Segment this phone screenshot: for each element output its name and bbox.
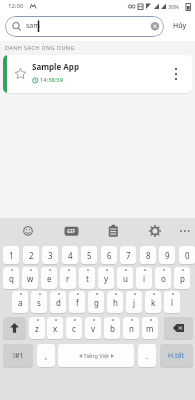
button[interactable]: v (85, 317, 101, 339)
staticText: v (91, 323, 96, 334)
button[interactable]: u (117, 267, 133, 289)
staticText: t (86, 273, 89, 284)
button[interactable]: j (126, 291, 142, 313)
staticText: a (18, 297, 23, 308)
button[interactable]: 8 (140, 246, 156, 264)
button[interactable]: q (3, 267, 19, 289)
button[interactable]: t (79, 267, 95, 289)
staticText: H.tất (168, 351, 185, 361)
staticText: 30% (168, 3, 179, 10)
staticText: 12:00 (8, 2, 24, 10)
staticText: c (72, 323, 76, 334)
staticText: Hủy (173, 21, 187, 31)
staticText: 14:38:59 (40, 76, 64, 84)
button[interactable]: k (145, 291, 161, 313)
button[interactable]: Hủy (168, 18, 192, 34)
button[interactable]: b (104, 317, 120, 339)
button[interactable]: Tiếng Việt (58, 344, 134, 367)
staticText: f (76, 297, 79, 308)
staticText: 3 (48, 250, 53, 261)
staticText: y (104, 273, 109, 284)
staticText: j (133, 297, 136, 308)
staticText: m (146, 323, 154, 334)
button[interactable]: , (37, 344, 55, 367)
staticText: u (123, 273, 128, 284)
staticText: 0 (185, 250, 190, 261)
button[interactable]: 4 (62, 246, 78, 264)
button[interactable]: 6 (101, 246, 117, 264)
staticText: 7 (126, 250, 131, 261)
staticText: 6 (107, 250, 112, 261)
staticText: DANH SÁCH ỨNG DỤNG (5, 44, 75, 51)
button[interactable]: f (69, 291, 85, 313)
staticText: b (110, 323, 115, 334)
button[interactable]: l (164, 291, 180, 313)
button[interactable]: g (88, 291, 104, 313)
button[interactable]: x (47, 317, 63, 339)
staticText: i (143, 273, 146, 284)
staticText: 5 (87, 250, 92, 261)
staticText: 9 (165, 250, 170, 261)
staticText: , (45, 350, 48, 361)
staticText: s (37, 297, 41, 308)
staticText: Sample App (32, 61, 79, 72)
button[interactable]: y (98, 267, 114, 289)
button[interactable]: z (29, 317, 45, 339)
button[interactable]: w (22, 267, 38, 289)
button[interactable]: 2 (23, 246, 39, 264)
button[interactable]: 3 (42, 246, 58, 264)
staticText: 8 (146, 250, 151, 261)
button[interactable]: a (12, 291, 28, 313)
staticText: q (9, 273, 14, 284)
staticText: l (171, 297, 174, 308)
staticText: r (66, 273, 70, 284)
button[interactable]: !#1 (3, 344, 33, 367)
button[interactable]: 7 (120, 246, 136, 264)
staticText: h (113, 297, 118, 308)
staticText: 1 (9, 250, 14, 261)
button[interactable]: o (155, 267, 171, 289)
staticText: !#1 (13, 351, 24, 361)
button[interactable]: Sample App (3, 55, 192, 93)
staticText: . (146, 350, 149, 361)
button[interactable]: 0 (179, 246, 195, 264)
button[interactable]: . (138, 344, 156, 367)
button[interactable]: s (31, 291, 47, 313)
button[interactable]: n (123, 317, 139, 339)
button[interactable] (164, 317, 193, 339)
button[interactable]: e (41, 267, 57, 289)
staticText: w (27, 273, 34, 284)
button[interactable]: c (66, 317, 82, 339)
button[interactable] (174, 66, 178, 82)
staticText: 4 (68, 250, 73, 261)
button[interactable]: i (136, 267, 152, 289)
button[interactable] (3, 317, 26, 339)
staticText: d (56, 297, 61, 308)
staticText: x (53, 323, 58, 334)
button[interactable]: h (107, 291, 123, 313)
button[interactable]: r (60, 267, 76, 289)
staticText: z (35, 323, 39, 334)
button[interactable]: 1 (3, 246, 19, 264)
button[interactable]: H.tất (160, 344, 193, 367)
staticText: k (151, 297, 156, 308)
staticText: p (180, 273, 185, 284)
button[interactable]: sam (5, 16, 164, 37)
button[interactable]: m (142, 317, 158, 339)
staticText: n (129, 323, 134, 334)
staticText: 2 (29, 250, 34, 261)
staticText: GIF (67, 228, 76, 235)
button[interactable]: d (50, 291, 66, 313)
staticText: g (94, 297, 99, 308)
staticText: e (47, 273, 52, 284)
staticText: Tiếng Việt (82, 352, 111, 359)
button[interactable]: 9 (159, 246, 175, 264)
button[interactable]: 5 (81, 246, 97, 264)
button[interactable]: p (174, 267, 190, 289)
staticText: o (161, 273, 166, 284)
staticText: sam (26, 21, 40, 31)
